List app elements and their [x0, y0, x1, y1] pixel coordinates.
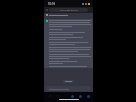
button[interactable]: Tabs	[77, 93, 83, 99]
button[interactable]: Home	[69, 93, 75, 99]
button[interactable]	[46, 86, 91, 91]
staticText: 10:16	[48, 2, 56, 6]
button[interactable]: Back	[47, 93, 52, 98]
button[interactable]: chat.openai.com	[49, 8, 88, 12]
staticText: chat.openai.com	[60, 9, 78, 12]
button[interactable]: Forward	[55, 93, 60, 98]
button[interactable]	[63, 80, 74, 83]
button[interactable]	[46, 14, 91, 19]
button[interactable]: Menu	[85, 93, 91, 99]
